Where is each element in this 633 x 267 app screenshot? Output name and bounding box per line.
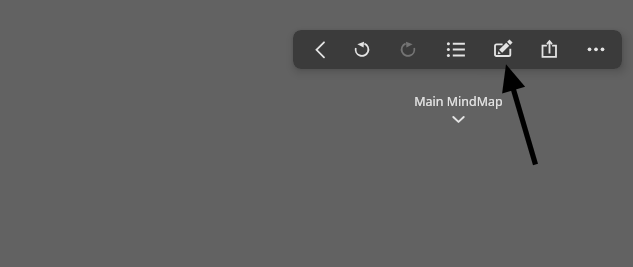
button[interactable]: Undo: [341, 30, 383, 69]
button[interactable]: More options: [575, 30, 617, 69]
staticText: Main MindMap: [414, 93, 503, 110]
button[interactable]: Share: [529, 30, 571, 69]
button[interactable]: Back: [299, 30, 341, 69]
button[interactable]: Edit: [481, 30, 523, 69]
button[interactable]: Main MindMap: [398, 93, 518, 127]
button[interactable]: Outline: [436, 30, 478, 69]
button[interactable]: Redo: [387, 30, 429, 69]
